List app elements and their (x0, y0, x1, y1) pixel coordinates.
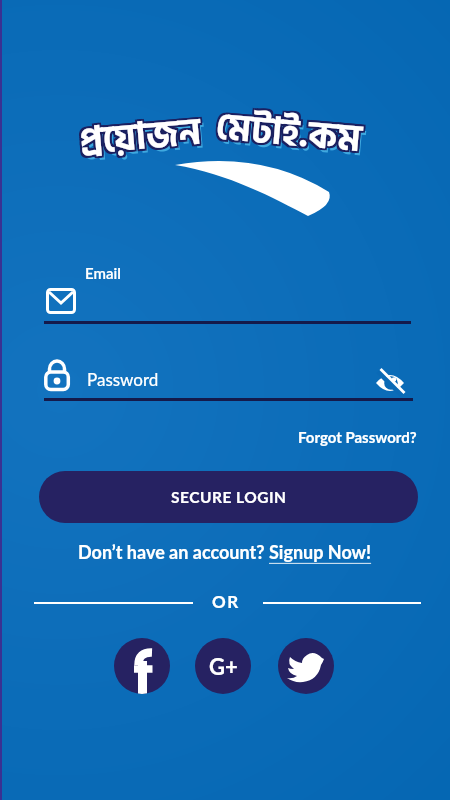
staticText: Don’t have an account? (78, 541, 269, 563)
staticText: প্রয়োজন (78, 105, 204, 175)
staticText: মেটাই.কম (212, 96, 362, 168)
staticText: প্রয়োজন (79, 101, 205, 171)
staticText: SECURE LOGIN (171, 488, 287, 507)
staticText: মেটাই.কম (212, 98, 362, 170)
staticText: প্রয়োজন (76, 105, 202, 175)
staticText: মেটাই.কম (213, 100, 364, 172)
staticText: প্রয়োজন (81, 107, 207, 177)
button[interactable] (44, 262, 411, 324)
staticText: মেটাই.কম (216, 102, 367, 174)
staticText: মেটাই.কম (216, 98, 366, 170)
staticText: প্রয়োজন (76, 103, 201, 173)
staticText: মেটাই.কম (214, 98, 364, 170)
button[interactable]: G+ (195, 638, 251, 694)
staticText: মেটাই.কম (216, 96, 366, 168)
staticText: প্রয়োজন (75, 101, 201, 171)
staticText: Password (87, 369, 159, 389)
staticText: প্রয়োজন (80, 105, 206, 175)
button[interactable]: Signup Now! (269, 541, 372, 563)
button[interactable]: Forgot Password? (298, 428, 417, 446)
staticText: মেটাই.কম (215, 100, 366, 172)
button[interactable] (44, 355, 369, 401)
staticText: মেটাই.কম (211, 100, 362, 172)
staticText: প্রয়োজন (77, 101, 203, 171)
staticText: G+ (209, 653, 238, 679)
button[interactable] (114, 638, 170, 694)
staticText: OR (212, 591, 240, 611)
button[interactable]: SECURE LOGIN (39, 471, 418, 523)
staticText: প্রয়োজন (80, 103, 205, 173)
staticText: Email (85, 264, 121, 282)
staticText: প্রয়োজন (78, 103, 203, 173)
button[interactable] (278, 638, 334, 694)
button[interactable] (375, 368, 405, 396)
staticText: মেটাই.কম (214, 96, 364, 168)
